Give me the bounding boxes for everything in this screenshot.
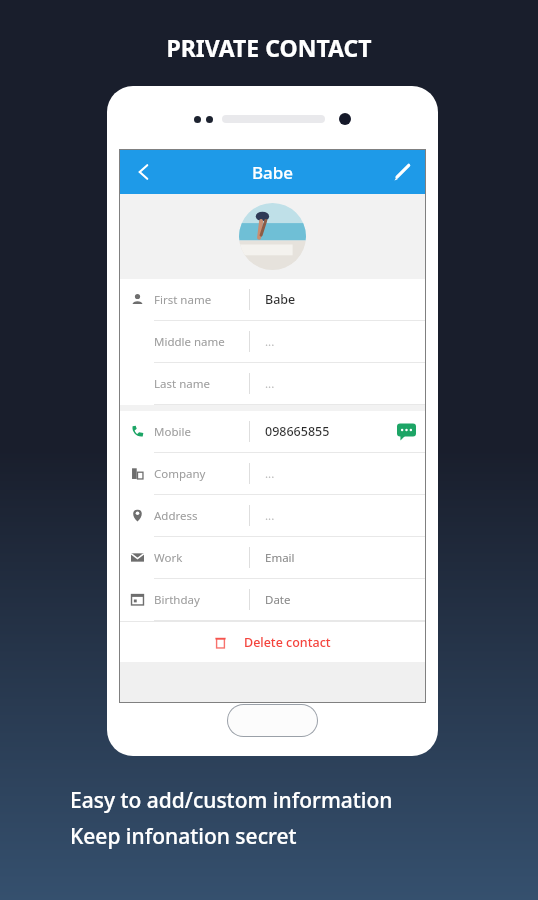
staticText: Work bbox=[154, 550, 249, 566]
button[interactable]: Edit bbox=[377, 150, 425, 194]
button[interactable]: First name bbox=[120, 279, 425, 321]
staticText: Email bbox=[265, 550, 425, 566]
staticText: Last name bbox=[154, 376, 249, 392]
button[interactable]: Middle name bbox=[120, 321, 425, 363]
button[interactable]: Last name bbox=[120, 363, 425, 405]
staticText: Middle name bbox=[154, 334, 249, 350]
staticText: 098665855 bbox=[265, 423, 397, 440]
button[interactable]: Address bbox=[120, 495, 425, 537]
staticText: Keep infonation secret bbox=[70, 822, 297, 851]
staticText: Easy to add/custom information bbox=[70, 786, 393, 815]
staticText: Date bbox=[265, 592, 425, 608]
staticText: Delete contact bbox=[244, 634, 331, 651]
staticText: First name bbox=[154, 292, 249, 308]
button[interactable]: Send message bbox=[397, 422, 416, 441]
staticText: Birthday bbox=[154, 592, 249, 608]
button[interactable]: Birthday bbox=[120, 579, 425, 621]
staticText: Mobile bbox=[154, 424, 249, 440]
button[interactable]: Delete contact bbox=[120, 622, 425, 662]
button[interactable]: Company bbox=[120, 453, 425, 495]
staticText: Babe bbox=[265, 291, 425, 308]
staticText: Address bbox=[154, 508, 249, 524]
button[interactable]: Home bbox=[228, 705, 317, 736]
button[interactable]: Mobile bbox=[120, 411, 425, 453]
staticText: Company bbox=[154, 466, 249, 482]
button[interactable]: Work bbox=[120, 537, 425, 579]
staticText: Babe bbox=[168, 161, 377, 184]
staticText: PRIVATE CONTACT bbox=[0, 32, 538, 63]
button[interactable]: Back bbox=[120, 150, 168, 194]
